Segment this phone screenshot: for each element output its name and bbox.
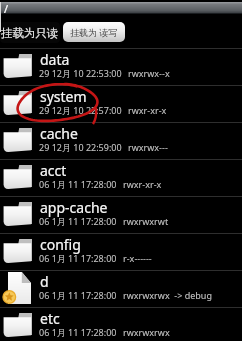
staticText: 29 12月 10 22:53:00 bbox=[39, 67, 122, 79]
button[interactable]: d bbox=[0, 270, 242, 307]
staticText: rwxrwxrwx -> debug bbox=[123, 289, 212, 301]
staticText: 挂载为 读写 bbox=[70, 26, 118, 38]
staticText: 06 1月 11 17:28:00 bbox=[39, 252, 117, 264]
button[interactable]: 挂载为只读 bbox=[0, 22, 60, 43]
button[interactable]: data bbox=[0, 48, 242, 85]
staticText: 06 1月 11 17:28:00 bbox=[39, 326, 117, 338]
button[interactable]: 挂载为 读写 bbox=[63, 22, 125, 42]
staticText: rwxrwxrwt bbox=[123, 215, 169, 227]
staticText: acct bbox=[40, 161, 67, 180]
staticText: app-cache bbox=[40, 198, 108, 217]
staticText: 06 1月 11 17:28:00 bbox=[39, 289, 117, 301]
staticText: data bbox=[40, 50, 70, 69]
staticText: rwxr-xr-x bbox=[128, 104, 167, 116]
staticText: 06 1月 11 17:28:00 bbox=[39, 178, 117, 190]
staticText: 06 1月 11 17:28:00 bbox=[39, 215, 117, 227]
staticText: 29 12月 10 22:59:00 bbox=[39, 141, 122, 153]
staticText: 挂载为只读 bbox=[1, 26, 59, 40]
staticText: rwxrwx--x bbox=[128, 67, 170, 79]
button[interactable]: acct bbox=[0, 159, 242, 196]
staticText: rwxrwxrwx bbox=[123, 326, 170, 338]
staticText: config bbox=[40, 235, 81, 254]
staticText: rwxr-xr-x bbox=[123, 178, 162, 190]
staticText: 29 12月 10 22:57:00 bbox=[39, 104, 122, 116]
button[interactable]: app-cache bbox=[0, 196, 242, 233]
staticText: d bbox=[40, 272, 49, 291]
staticText: etc bbox=[40, 309, 60, 328]
staticText: system bbox=[40, 87, 87, 106]
button[interactable]: config bbox=[0, 233, 242, 270]
button[interactable]: etc bbox=[0, 307, 242, 341]
staticText: cache bbox=[40, 124, 78, 143]
staticText: r-x------ bbox=[123, 252, 152, 264]
staticText: / bbox=[4, 1, 9, 15]
staticText: rwxrwx--- bbox=[128, 141, 168, 153]
button[interactable]: cache bbox=[0, 122, 242, 159]
button[interactable]: system bbox=[0, 85, 242, 122]
